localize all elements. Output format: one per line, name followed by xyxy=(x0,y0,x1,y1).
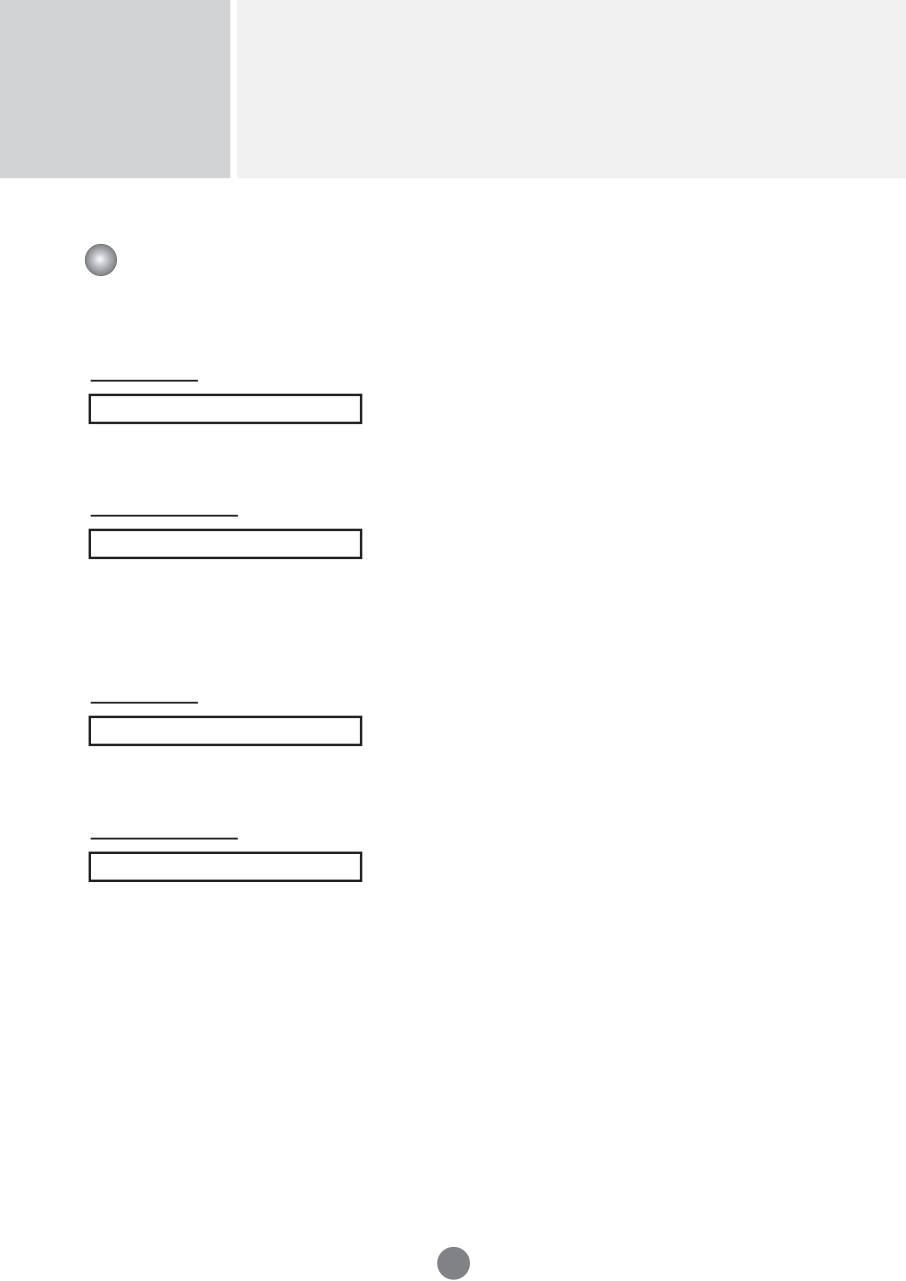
button[interactable]: Message xyxy=(89,852,362,882)
button[interactable]: Name xyxy=(89,394,362,424)
button[interactable]: Email address xyxy=(89,529,362,559)
button[interactable]: Subject xyxy=(89,716,362,746)
button[interactable]: Profile photo xyxy=(85,244,117,276)
button[interactable]: Submit xyxy=(437,1247,470,1280)
